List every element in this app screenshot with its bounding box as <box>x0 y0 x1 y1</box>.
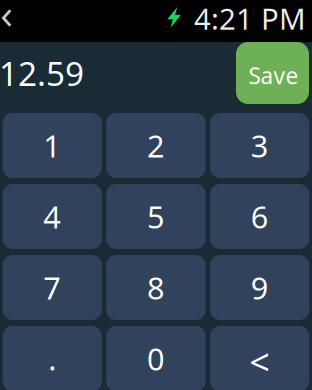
staticText: 4 <box>43 196 61 237</box>
staticText: Save <box>248 60 298 90</box>
staticText: 9 <box>251 267 269 308</box>
staticText: . <box>48 338 56 379</box>
button[interactable]: 0 <box>106 326 206 390</box>
staticText: 2 <box>147 125 165 166</box>
button[interactable]: 8 <box>106 255 206 320</box>
staticText: 0 <box>147 338 165 379</box>
button[interactable]: 2 <box>106 113 206 178</box>
button[interactable]: 7 <box>3 255 102 320</box>
button[interactable]: 6 <box>210 184 309 249</box>
button[interactable]: 4 <box>3 184 102 249</box>
staticText: 12.59 <box>0 51 84 95</box>
staticText: 6 <box>251 196 269 237</box>
button[interactable]: Delete <box>210 326 309 390</box>
staticText: 7 <box>43 267 61 308</box>
button[interactable]: Back <box>1 0 28 36</box>
staticText: < <box>249 338 270 385</box>
button[interactable]: Decimal point <box>3 326 102 390</box>
staticText: 1 <box>43 125 61 166</box>
staticText: 8 <box>147 267 165 308</box>
button[interactable]: 3 <box>210 113 309 178</box>
button[interactable]: 1 <box>3 113 102 178</box>
button[interactable]: Save <box>236 42 309 104</box>
staticText: 4:21 PM <box>194 0 306 38</box>
staticText: 5 <box>147 196 165 237</box>
staticText: 3 <box>251 125 269 166</box>
button[interactable]: 9 <box>210 255 309 320</box>
button[interactable]: 5 <box>106 184 206 249</box>
